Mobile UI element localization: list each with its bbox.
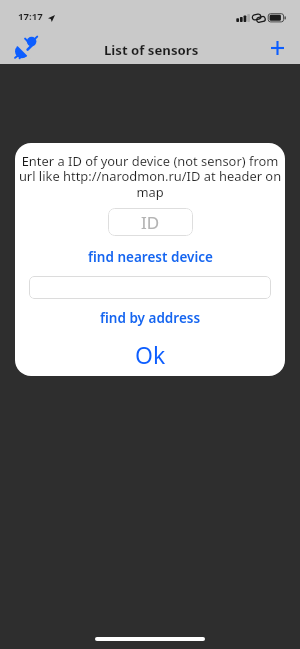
- staticText: ID: [141, 211, 160, 234]
- staticText: Ok: [135, 339, 166, 365]
- button[interactable]: Connect device: [0, 30, 52, 64]
- button[interactable]: Ok: [15, 339, 285, 365]
- button[interactable]: find nearest device: [15, 247, 285, 267]
- staticText: 17:17: [18, 10, 43, 23]
- staticText: find by address: [100, 309, 201, 327]
- button[interactable]: Add sensor: [256, 30, 300, 64]
- button[interactable]: find by address: [15, 308, 285, 328]
- staticText: List of sensors: [104, 41, 199, 59]
- staticText: find nearest device: [88, 248, 213, 266]
- button[interactable]: ID: [108, 208, 193, 236]
- staticText: Enter a ID of your device (not sensor) f…: [17, 152, 283, 201]
- button[interactable]: [29, 276, 271, 299]
